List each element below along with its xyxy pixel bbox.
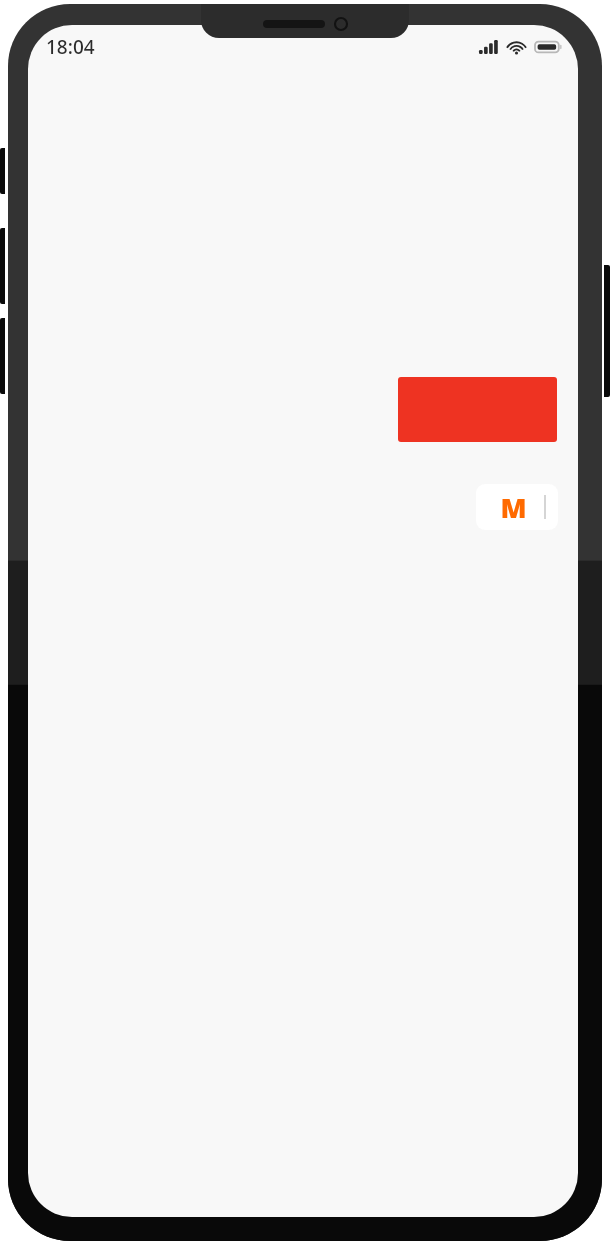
button[interactable]: Brand badge M — [476, 484, 558, 530]
staticText: 18:04 — [46, 34, 95, 60]
staticText: M — [500, 489, 527, 526]
button[interactable] — [398, 377, 557, 442]
